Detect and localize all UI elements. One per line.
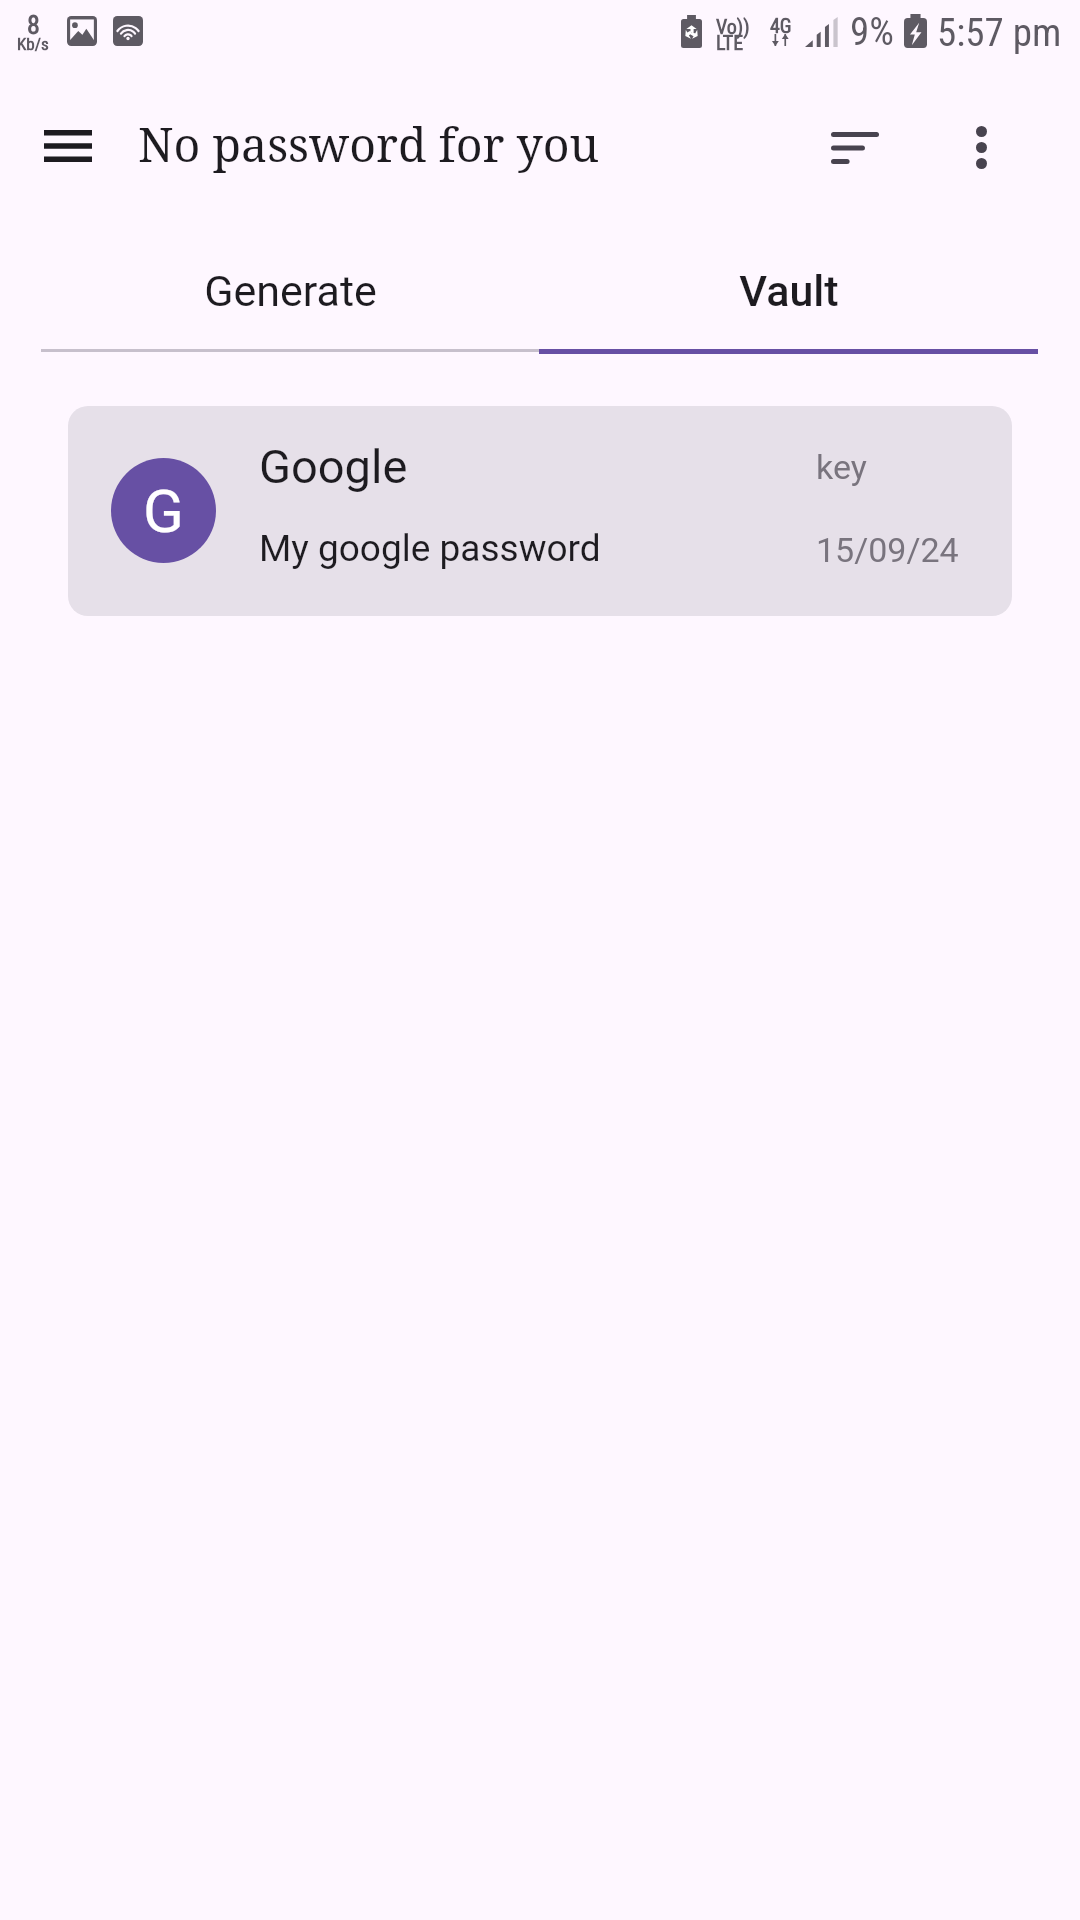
button[interactable]: More options — [933, 99, 1029, 195]
button[interactable]: G — [68, 406, 1012, 616]
staticText: My google password — [259, 527, 601, 570]
staticText: G — [143, 476, 184, 546]
button[interactable]: Generate — [41, 233, 539, 349]
staticText: 4G — [770, 14, 792, 37]
button[interactable]: Vault — [539, 233, 1038, 349]
staticText: Vault — [739, 266, 839, 316]
staticText: Vo)) — [716, 15, 750, 38]
staticText: key — [816, 447, 867, 487]
staticText: 8 — [27, 10, 40, 40]
staticText: 9% — [850, 9, 894, 55]
staticText: Generate — [204, 266, 377, 316]
staticText: Kb/s — [17, 34, 49, 54]
staticText: LTE — [716, 31, 744, 54]
staticText: Google — [259, 439, 408, 494]
staticText: 15/09/24 — [816, 530, 959, 570]
button[interactable]: Sort — [807, 100, 903, 196]
staticText: No password for you — [138, 112, 600, 175]
staticText: 5:57 pm — [937, 10, 1062, 56]
button[interactable]: Open navigation menu — [20, 98, 116, 194]
